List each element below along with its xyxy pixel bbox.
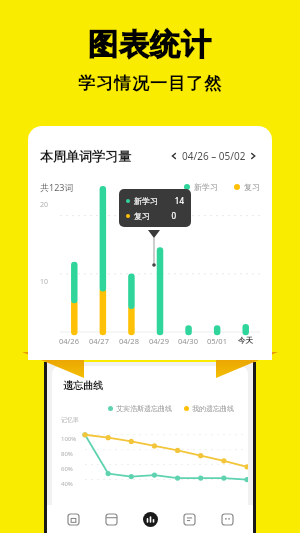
button[interactable]: Profile [214,506,240,532]
staticText: 20 [40,200,49,210]
staticText: 我的遗忘曲线 [192,404,234,413]
staticText: 共123词 [40,181,74,193]
staticText: 04/30 [178,336,198,346]
staticText: 04/26 – 05/02 [182,149,246,163]
staticText: 艾宾浩斯遗忘曲线 [116,404,172,413]
staticText: 10 [40,277,49,287]
button[interactable]: Cards [98,506,124,532]
button[interactable]: Statistics [137,506,163,532]
staticText: 新学习 [134,196,158,206]
staticText: 今天 [238,336,253,345]
staticText: 复习 [244,182,260,192]
button[interactable]: Next week [246,149,260,163]
button[interactable]: Notes [176,506,202,532]
button[interactable]: Previous week [166,148,182,164]
staticText: 遗忘曲线 [63,379,103,392]
staticText: 04/27 [89,336,109,346]
staticText: 0 [160,210,176,221]
staticText: 记忆率 [61,416,79,424]
staticText: 04/26 [59,336,79,346]
staticText: 新学习 [194,182,218,192]
staticText: 复习 [134,211,150,221]
staticText: 40% [61,480,73,488]
staticText: 60% [61,465,73,473]
staticText: 05/01 [207,336,227,346]
staticText: 80% [61,450,73,458]
staticText: 100% [61,435,77,443]
staticText: 04/29 [149,336,169,346]
staticText: 04/28 [119,336,139,346]
button[interactable]: Save [60,506,86,532]
staticText: 本周单词学习量 [40,148,131,164]
staticText: 14 [168,195,184,206]
staticText: 图表统计 [0,26,300,64]
staticText: 学习情况一目了然 [0,73,300,94]
